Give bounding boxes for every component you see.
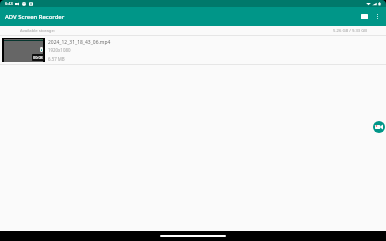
staticText: 2024_12_31_18_43_06.mp4 (48, 39, 111, 46)
button[interactable]: More options (371, 9, 383, 24)
staticText: Available storage: (20, 28, 55, 34)
button[interactable]: Record screen (373, 121, 385, 133)
staticText: 6.57 MB (48, 56, 65, 62)
button[interactable]: Saved videos (358, 9, 370, 24)
button[interactable]: 00:08 (0, 36, 386, 64)
staticText: 5.26 GB / 9.33 GB (333, 28, 368, 34)
staticText: 6:43 (5, 1, 13, 6)
staticText: ADV Screen Recorder (5, 13, 65, 21)
staticText: 1920x1080 (48, 47, 71, 53)
staticText: 00:08 (33, 55, 43, 60)
